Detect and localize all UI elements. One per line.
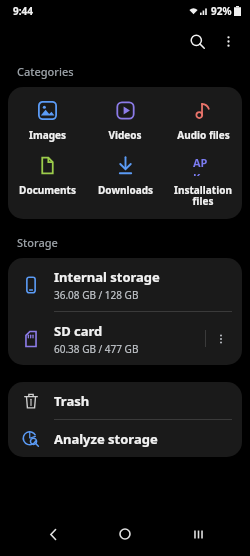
staticText: Internal storage — [54, 268, 160, 286]
staticText: Images — [29, 128, 66, 142]
button[interactable]: Back — [33, 514, 73, 554]
button[interactable]: More options — [213, 26, 243, 56]
staticText: 60.38 GB / 477 GB — [54, 342, 139, 356]
staticText: 36.08 GB / 128 GB — [54, 288, 139, 302]
staticText: Videos — [108, 128, 142, 142]
button[interactable]: Search — [181, 25, 213, 57]
button[interactable]: Home — [105, 514, 145, 554]
button[interactable]: Videos — [86, 98, 164, 144]
staticText: SD card — [54, 322, 103, 340]
button[interactable]: Downloads — [86, 153, 164, 199]
staticText: 92% — [211, 4, 232, 18]
button[interactable]: APK — [164, 153, 242, 210]
staticText: Storage — [17, 235, 58, 250]
button[interactable]: Internal storage — [8, 258, 242, 311]
staticText: Installation files — [174, 183, 232, 208]
staticText: APK — [193, 155, 214, 176]
staticText: Documents — [19, 183, 76, 197]
button[interactable]: Documents — [8, 153, 86, 199]
staticText: Analyze storage — [54, 430, 158, 448]
button[interactable]: Trash — [8, 382, 242, 419]
staticText: Downloads — [98, 183, 153, 197]
staticText: 9:44 — [13, 4, 33, 18]
button[interactable]: Analyze storage — [8, 420, 242, 457]
staticText: Audio files — [177, 128, 230, 142]
button[interactable]: Images — [8, 98, 86, 144]
button[interactable]: Audio files — [164, 98, 242, 144]
button[interactable]: SD card options — [206, 324, 236, 354]
button[interactable]: SD card — [8, 312, 242, 365]
staticText: Categories — [17, 64, 74, 79]
staticText: Trash — [54, 392, 90, 410]
button[interactable]: Recents — [178, 514, 218, 554]
